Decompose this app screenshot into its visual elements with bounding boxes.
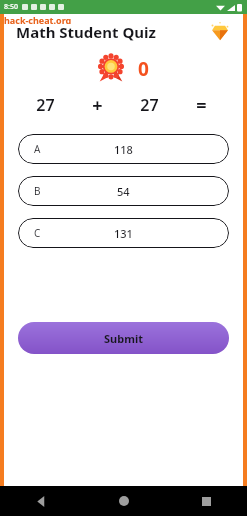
- button[interactable]: B: [18, 176, 229, 206]
- staticText: hack-cheat.org: [4, 14, 72, 24]
- button[interactable]: Submit: [18, 322, 229, 354]
- button[interactable]: Gems: [209, 21, 231, 43]
- staticText: 27: [140, 94, 159, 116]
- staticText: A: [34, 142, 41, 156]
- button[interactable]: Home: [83, 486, 165, 516]
- staticText: 8:50: [4, 2, 18, 12]
- button[interactable]: Back: [0, 486, 83, 516]
- button[interactable]: Recent apps: [165, 486, 247, 516]
- staticText: Math Student Quiz: [16, 22, 156, 42]
- staticText: 131: [114, 226, 133, 241]
- staticText: 27: [36, 94, 55, 116]
- button[interactable]: A: [18, 134, 229, 164]
- staticText: =: [196, 93, 207, 118]
- staticText: B: [34, 184, 41, 198]
- staticText: Submit: [104, 331, 143, 346]
- staticText: +: [92, 93, 103, 118]
- button[interactable]: C: [18, 218, 229, 248]
- staticText: 118: [114, 142, 133, 157]
- staticText: 0: [138, 56, 149, 82]
- staticText: 54: [117, 184, 130, 199]
- staticText: C: [34, 226, 41, 240]
